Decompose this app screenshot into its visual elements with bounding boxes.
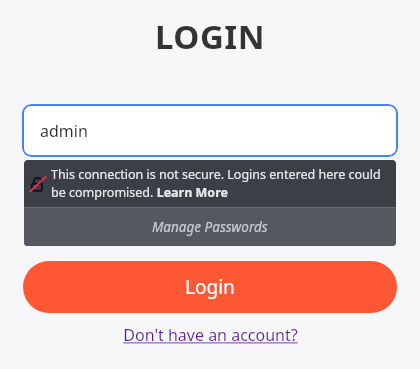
- other: Insecure connection: [29, 175, 47, 193]
- button[interactable]: Insecure connection: [24, 160, 396, 207]
- staticText: Login: [185, 274, 235, 300]
- button[interactable]: Manage Passwords: [24, 208, 396, 246]
- staticText: LOGIN: [155, 14, 265, 59]
- button[interactable]: Don't have an account?: [123, 324, 298, 346]
- staticText: This connection is not secure. Logins en…: [51, 166, 396, 201]
- button[interactable]: admin: [22, 104, 398, 157]
- button[interactable]: Login: [23, 261, 397, 313]
- staticText: admin: [40, 120, 88, 142]
- staticText: Manage Passwords: [152, 218, 268, 236]
